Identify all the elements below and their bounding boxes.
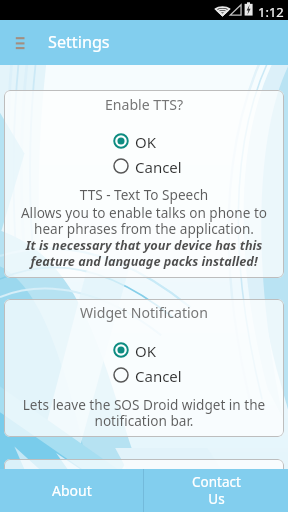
button[interactable]: Contact Us (144, 469, 288, 512)
staticText: Lets leave the SOS Droid widget in the n… (13, 395, 275, 430)
staticText: Widget Notification (80, 303, 208, 322)
button[interactable]: Cancel (113, 157, 187, 174)
staticText: OK (135, 132, 157, 149)
staticText: Cancel (135, 157, 182, 174)
staticText: OK (135, 501, 157, 512)
staticText: TTS - Text To Speech (13, 185, 275, 204)
button[interactable]: OK (113, 132, 187, 149)
staticText: Contact Us (192, 473, 241, 508)
button[interactable]: Open navigation menu (11, 34, 29, 52)
staticText: About (52, 481, 92, 500)
staticText: Allows you to enable talks on phone to h… (13, 203, 275, 238)
staticText: Settings (48, 31, 110, 53)
staticText: Sound (123, 465, 166, 484)
button[interactable]: Cancel (113, 366, 187, 383)
staticText: Cancel (135, 366, 182, 383)
staticText: Enable TTS? (105, 95, 184, 114)
staticText: 1:12 (258, 3, 284, 21)
staticText: It is necessary that your device has thi… (13, 236, 275, 269)
button[interactable]: About (0, 469, 143, 512)
button[interactable]: OK (113, 341, 187, 358)
staticText: OK (135, 341, 157, 358)
